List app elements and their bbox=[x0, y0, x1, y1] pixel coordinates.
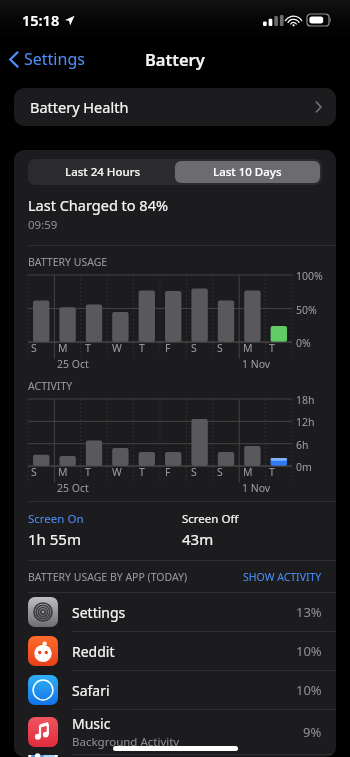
button[interactable]: Settings bbox=[14, 593, 336, 631]
staticText: 100% bbox=[296, 269, 323, 283]
staticText: S bbox=[191, 465, 197, 479]
staticText: BATTERY USAGE BY APP (TODAY) bbox=[28, 570, 188, 584]
staticText: M bbox=[243, 341, 253, 355]
staticText: Last 10 Days bbox=[213, 164, 282, 180]
staticText: M bbox=[58, 341, 68, 355]
staticText: 50% bbox=[296, 303, 317, 317]
staticText: S bbox=[31, 465, 37, 479]
staticText: W bbox=[112, 465, 122, 479]
staticText: M bbox=[243, 465, 253, 479]
staticText: Settings bbox=[72, 603, 126, 622]
button[interactable]: Settings bbox=[0, 44, 93, 74]
staticText: S bbox=[217, 465, 223, 479]
staticText: Screen On bbox=[28, 511, 84, 527]
staticText: Battery bbox=[145, 48, 205, 70]
staticText: T bbox=[139, 341, 145, 355]
staticText: S bbox=[217, 341, 223, 355]
staticText: BATTERY USAGE bbox=[28, 255, 108, 269]
staticText: T bbox=[85, 465, 91, 479]
staticText: T bbox=[269, 341, 275, 355]
staticText: Battery Health bbox=[30, 97, 129, 117]
staticText: 6h bbox=[296, 438, 309, 452]
button[interactable]: Last 10 Days bbox=[175, 161, 320, 183]
button[interactable]: Safari bbox=[14, 671, 336, 709]
staticText: 10% bbox=[296, 642, 322, 660]
staticText: W bbox=[112, 341, 122, 355]
staticText: Settings bbox=[24, 48, 85, 70]
staticText: S bbox=[31, 341, 37, 355]
staticText: F bbox=[165, 341, 171, 355]
staticText: Safari bbox=[72, 681, 110, 700]
staticText: 9% bbox=[303, 723, 322, 741]
staticText: 1 Nov bbox=[242, 481, 271, 495]
staticText: 1h 55m bbox=[28, 529, 81, 549]
staticText: 0m bbox=[296, 460, 312, 474]
staticText: Last 24 Hours bbox=[65, 164, 141, 180]
staticText: Background Activity bbox=[72, 734, 180, 750]
staticText: 09:59 bbox=[28, 217, 58, 233]
button[interactable]: Outlook bbox=[14, 755, 336, 757]
staticText: Reddit bbox=[72, 642, 115, 661]
button[interactable]: Battery Health bbox=[14, 88, 336, 126]
staticText: Music bbox=[72, 714, 111, 733]
staticText: T bbox=[269, 465, 275, 479]
staticText: T bbox=[139, 465, 145, 479]
staticText: M bbox=[58, 465, 68, 479]
button[interactable]: Music bbox=[14, 710, 336, 754]
staticText: 13% bbox=[296, 603, 322, 621]
staticText: 43m bbox=[182, 529, 214, 549]
staticText: ACTIVITY bbox=[28, 379, 73, 393]
staticText: 10% bbox=[296, 681, 322, 699]
staticText: 12h bbox=[296, 415, 315, 429]
staticText: 1 Nov bbox=[242, 357, 271, 371]
staticText: 15:18 bbox=[22, 10, 60, 30]
staticText: Last Charged to 84% bbox=[28, 195, 168, 215]
button[interactable]: Last 24 Hours bbox=[30, 161, 175, 183]
staticText: Screen Off bbox=[182, 511, 239, 527]
staticText: S bbox=[191, 341, 197, 355]
staticText: 25 Oct bbox=[57, 357, 89, 371]
staticText: 0% bbox=[296, 336, 311, 350]
staticText: F bbox=[165, 465, 171, 479]
staticText: 25 Oct bbox=[57, 481, 89, 495]
staticText: SHOW ACTIVITY bbox=[243, 570, 322, 584]
button[interactable]: SHOW ACTIVITY bbox=[243, 570, 322, 584]
staticText: T bbox=[85, 341, 91, 355]
button[interactable]: Reddit bbox=[14, 632, 336, 670]
staticText: 18h bbox=[296, 393, 315, 407]
